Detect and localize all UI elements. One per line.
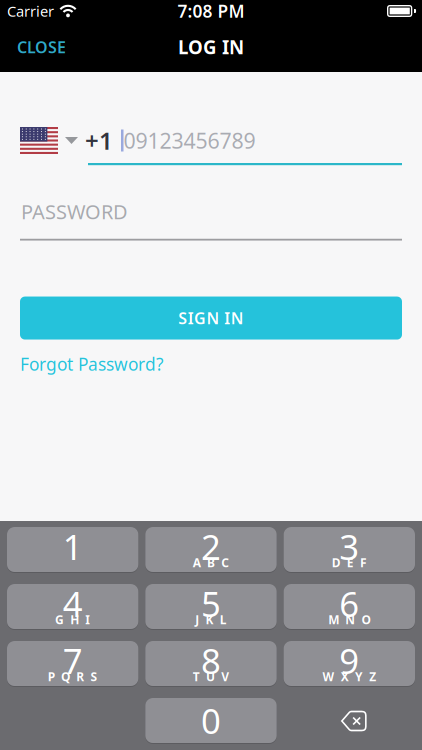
staticText: +1 bbox=[85, 125, 113, 156]
staticText: A B C bbox=[193, 554, 229, 570]
button[interactable] bbox=[7, 527, 138, 573]
staticText: 7 bbox=[63, 637, 83, 683]
staticText: 6 bbox=[339, 580, 359, 626]
button[interactable]: W X Y Z bbox=[284, 641, 415, 687]
button[interactable]: D E F bbox=[284, 527, 415, 573]
button[interactable]: A B C bbox=[145, 527, 277, 573]
staticText: CLOSE bbox=[17, 36, 66, 58]
staticText: LOG IN bbox=[178, 35, 244, 59]
button[interactable]: M N O bbox=[284, 584, 415, 630]
button[interactable]: J K L bbox=[145, 584, 277, 630]
staticText: 2 bbox=[201, 523, 221, 569]
button[interactable]: P Q R S bbox=[7, 641, 138, 687]
staticText: 09123456789 bbox=[123, 126, 255, 155]
staticText: 0 bbox=[201, 697, 221, 743]
staticText: 8 bbox=[201, 637, 221, 683]
button[interactable]: SIGN IN bbox=[20, 297, 402, 340]
staticText: J K L bbox=[195, 611, 227, 627]
staticText: D E F bbox=[332, 554, 367, 570]
button[interactable]: Password bbox=[0, 198, 128, 225]
staticText bbox=[71, 554, 74, 570]
button[interactable]: Forgot Password? bbox=[0, 353, 164, 376]
button[interactable]: Country code bbox=[20, 127, 78, 154]
button[interactable]: G H I bbox=[7, 584, 138, 630]
staticText: SIGN IN bbox=[178, 307, 244, 329]
button[interactable]: CLOSE bbox=[0, 36, 66, 58]
staticText: G H I bbox=[55, 611, 90, 627]
button[interactable]: Delete bbox=[284, 698, 415, 744]
staticText: 1 bbox=[63, 523, 83, 569]
button[interactable]: T U V bbox=[145, 641, 277, 687]
button[interactable]: 0 bbox=[145, 698, 277, 744]
button[interactable]: Mobile number bbox=[121, 126, 255, 155]
staticText: M N O bbox=[328, 611, 370, 627]
staticText: 5 bbox=[201, 580, 221, 626]
staticText: P Q R S bbox=[48, 668, 97, 684]
staticText: T U V bbox=[193, 668, 229, 684]
staticText: 3 bbox=[339, 523, 359, 569]
staticText: PASSWORD bbox=[21, 198, 128, 225]
staticText: W X Y Z bbox=[322, 668, 376, 684]
staticText: 4 bbox=[63, 580, 83, 626]
staticText: 9 bbox=[339, 637, 359, 683]
staticText: Carrier bbox=[7, 1, 54, 21]
staticText: Forgot Password? bbox=[20, 353, 164, 376]
staticText: 7:08 PM bbox=[177, 0, 244, 22]
